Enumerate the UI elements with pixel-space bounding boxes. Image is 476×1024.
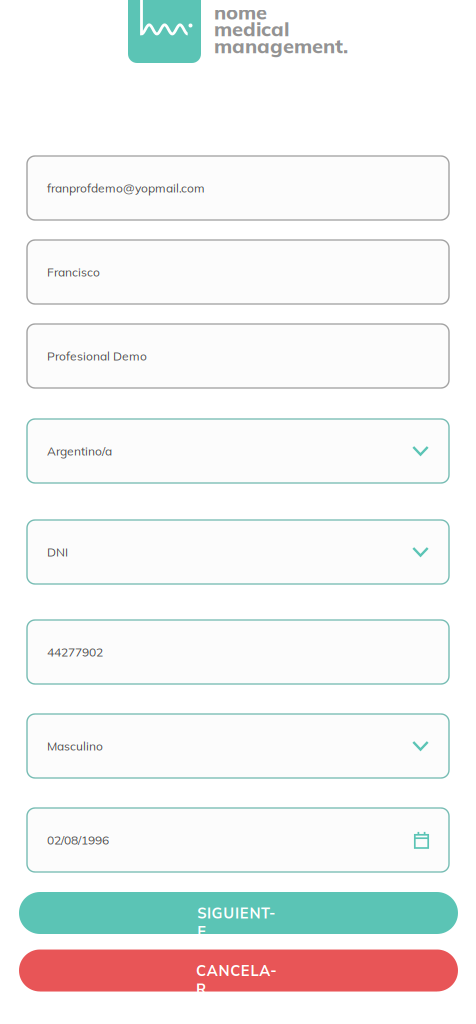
staticText: Profesional Demo (47, 348, 147, 364)
staticText: management. (214, 33, 348, 58)
staticText: SIGUIENTE (197, 904, 280, 922)
button[interactable]: Apellido (27, 324, 449, 388)
staticText: CANCELAR (196, 961, 281, 980)
staticText: medical (214, 16, 289, 41)
staticText: Masculino (47, 738, 103, 754)
staticText: franprofdemo@yopmail.com (47, 180, 205, 196)
staticText: DNI (47, 544, 68, 560)
button[interactable]: Tipo de documento (27, 520, 449, 584)
button[interactable]: Genero (27, 714, 449, 778)
button[interactable]: CANCELAR (19, 949, 458, 991)
button[interactable]: Fecha de nacimiento (27, 808, 449, 872)
button[interactable]: Nacionalidad (27, 419, 449, 483)
button[interactable]: Numero de documento (27, 620, 449, 684)
staticText: Francisco (47, 264, 100, 280)
staticText: 44277902 (47, 644, 103, 660)
button[interactable]: SIGUIENTE (19, 892, 458, 934)
staticText: 02/08/1996 (47, 832, 109, 848)
button[interactable]: Nombre (27, 240, 449, 304)
staticText: Argentino/a (47, 443, 112, 459)
button[interactable]: Email (27, 156, 449, 220)
staticText: home (214, 0, 267, 25)
